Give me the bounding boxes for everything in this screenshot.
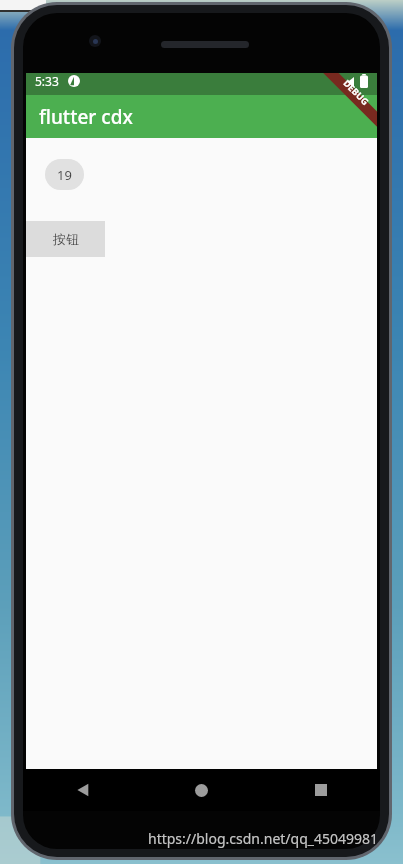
button[interactable]: Back <box>23 769 142 811</box>
staticText: 19 <box>57 166 72 184</box>
button[interactable]: 按钮 <box>26 221 105 257</box>
staticText: flutter cdx <box>39 104 133 130</box>
button[interactable]: 19 <box>45 159 84 190</box>
staticText: 5:33 <box>35 73 59 89</box>
staticText: https://blog.csdn.net/qq_45049981 <box>148 829 379 848</box>
staticText: DEBUG <box>341 77 372 107</box>
button[interactable]: Recent apps <box>261 769 380 811</box>
staticText: 按钮 <box>53 231 79 247</box>
button[interactable]: flutter cdx <box>39 104 133 130</box>
button[interactable]: Home <box>142 769 261 811</box>
